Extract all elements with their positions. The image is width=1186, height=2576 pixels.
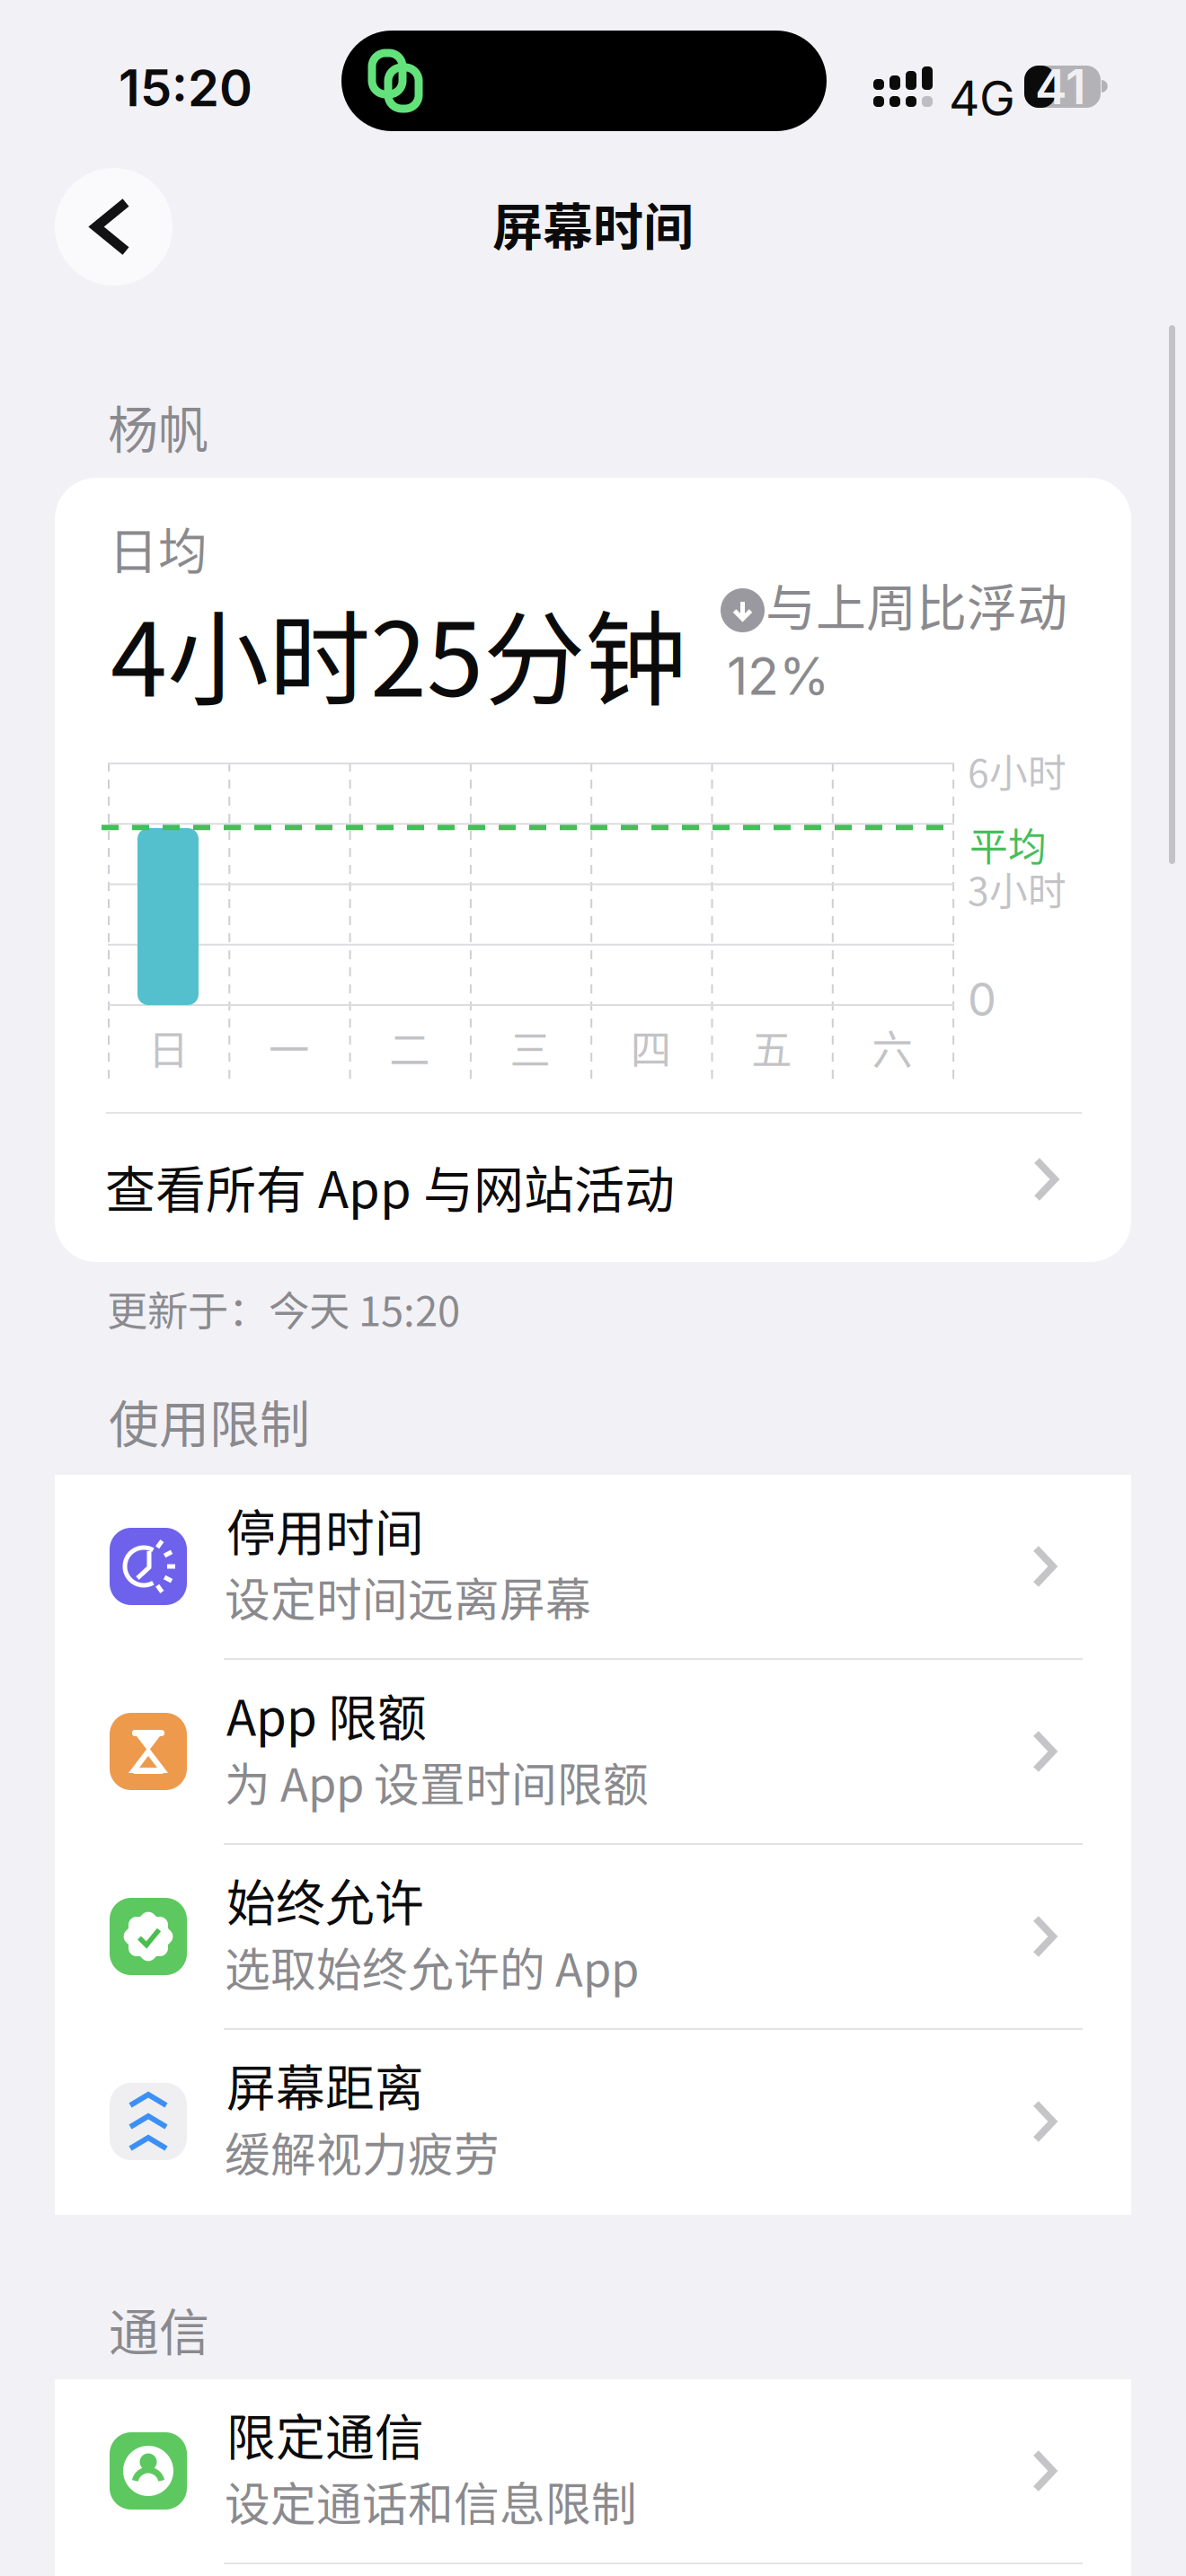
staticText: 4G (949, 69, 1015, 127)
staticText: 屏幕时间 (492, 187, 694, 260)
staticText: 15:20 (119, 57, 252, 118)
staticText: 平均 (969, 817, 1047, 872)
button[interactable]: 通信安全 (55, 2564, 1131, 2576)
button[interactable]: 停用时间 (55, 1475, 1131, 1660)
staticText: 更新于：今天 15:20 (107, 1279, 460, 1338)
staticText: 4小时25分钟 (111, 578, 686, 726)
button[interactable]: 始终允许 (55, 1845, 1131, 2030)
staticText: 三 (510, 1018, 550, 1077)
staticText: 使用限制 (109, 1384, 310, 1457)
staticText: 限定通信 (226, 2398, 424, 2469)
staticText: 设定通话和信息限制 (225, 2468, 637, 2534)
staticText: 与上周比浮动 (766, 568, 1067, 640)
staticText: 杨帆 (108, 390, 208, 463)
staticText: 缓解视力疲劳 (225, 2119, 500, 2185)
staticText: 屏幕距离 (226, 2049, 424, 2120)
staticText: 日 (148, 1018, 188, 1077)
button[interactable]: 限定通信 (55, 2379, 1131, 2564)
staticText: 五 (751, 1018, 792, 1077)
staticText: 六 (872, 1018, 912, 1077)
staticText: 3小时 (968, 861, 1067, 916)
staticText: 选取始终允许的 App (225, 1934, 639, 2000)
button[interactable]: 返回 (55, 168, 173, 286)
staticText: 一 (269, 1018, 309, 1077)
button[interactable]: 屏幕距离 (55, 2030, 1131, 2215)
staticText: 查看所有 App 与网站活动 (105, 1150, 675, 1223)
staticText: 日均 (109, 512, 208, 583)
staticText: 0 (968, 972, 996, 1027)
staticText: 41 (1035, 58, 1086, 116)
staticText: 四 (631, 1018, 671, 1077)
staticText: 通信 (109, 2292, 209, 2365)
staticText: 停用时间 (226, 1494, 424, 1565)
staticText: App 限额 (226, 1679, 427, 1750)
staticText: 始终允许 (226, 1864, 424, 1935)
staticText: 为 App 设置时间限额 (225, 1749, 649, 1815)
staticText: 6小时 (968, 743, 1067, 798)
staticText: 设定时间远离屏幕 (225, 1564, 591, 1630)
button[interactable]: 查看所有 App 与网站活动 (55, 1114, 1131, 1262)
button[interactable]: App 限额 (55, 1660, 1131, 1845)
staticText: 二 (389, 1018, 430, 1077)
staticText: 12% (727, 645, 829, 707)
